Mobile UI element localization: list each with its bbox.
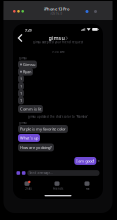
staticText: gimsu [48, 34, 64, 42]
staticText: 1 [20, 76, 22, 81]
staticText: 9:28 [24, 27, 31, 33]
staticText: iOS 16.0 [50, 12, 62, 15]
staticText: I am good! [76, 158, 94, 164]
staticText: Me [86, 187, 90, 190]
staticText: Send a message... [29, 171, 53, 175]
button[interactable]: Send a message... [27, 170, 99, 176]
button[interactable]: Me [73, 181, 103, 190]
staticText: Gimsu [23, 62, 35, 67]
staticText: 1 [20, 91, 22, 96]
button[interactable]: Photos [22, 171, 25, 175]
button[interactable]: Chats [13, 181, 43, 190]
staticText: Comm is lit [20, 106, 41, 112]
staticText: gimsu [19, 56, 27, 60]
staticText: gimsu updated the chat's color to "Mumba… [28, 115, 88, 118]
staticText: 9:34 AM [52, 50, 64, 53]
staticText: How are yo doing? [20, 145, 52, 150]
staticText: Friends [53, 187, 63, 190]
staticText: Purple is my favorite color [20, 126, 66, 132]
staticText: Ryan [23, 69, 31, 74]
button[interactable]: Camera [16, 171, 20, 175]
button[interactable]: Friends [43, 181, 73, 190]
staticText: gimsu accepted your friend request [33, 40, 83, 44]
staticText: iPhone 13 Pro [44, 6, 69, 12]
staticText: gimsu [19, 121, 27, 124]
staticText: 1 [20, 98, 22, 103]
staticText: What's up [20, 135, 38, 141]
staticText: 1 [20, 83, 22, 89]
button[interactable]: Back [16, 34, 24, 42]
staticText: Chats [24, 187, 31, 190]
